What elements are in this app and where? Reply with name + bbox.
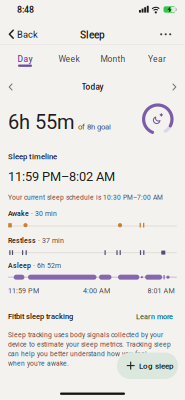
staticText: 6h 55m xyxy=(8,110,75,134)
staticText: Sleep tracking uses body signals collect… xyxy=(8,331,163,339)
staticText: Log sleep xyxy=(139,361,173,371)
staticText: · 6h 52m xyxy=(33,261,61,270)
staticText: Week xyxy=(58,54,79,64)
staticText: Fitbit sleep tracking xyxy=(8,312,73,321)
staticText: Today xyxy=(81,82,103,92)
staticText: 4:00 AM xyxy=(83,286,110,295)
staticText: Restless xyxy=(8,236,36,245)
staticText: · 30 min xyxy=(31,209,57,218)
staticText: Sleep timeline xyxy=(8,152,57,161)
staticText: Learn more xyxy=(136,312,173,321)
staticText: 11:59 PM–8:02 AM xyxy=(8,169,115,184)
staticText: Year xyxy=(148,54,166,64)
staticText: 8:01 AM xyxy=(147,286,174,295)
staticText: Sleep xyxy=(80,29,105,41)
staticText: Your current sleep schedule is 10:30 PM–… xyxy=(8,193,163,201)
staticText: when you're awake. xyxy=(8,359,69,367)
staticText: Day xyxy=(17,54,32,64)
staticText: 8:48 xyxy=(17,4,34,15)
staticText: · 37 min xyxy=(38,236,64,245)
staticText: of 8h goal xyxy=(78,122,111,131)
staticText: Asleep xyxy=(8,261,31,270)
staticText: Awake xyxy=(8,209,29,218)
staticText: Back xyxy=(17,29,38,40)
staticText: can help you better understand how you f… xyxy=(8,350,147,358)
staticText: device to estimate your sleep metrics. T… xyxy=(8,340,171,348)
staticText: 11:59 PM xyxy=(8,286,39,295)
staticText: Month xyxy=(100,54,125,64)
